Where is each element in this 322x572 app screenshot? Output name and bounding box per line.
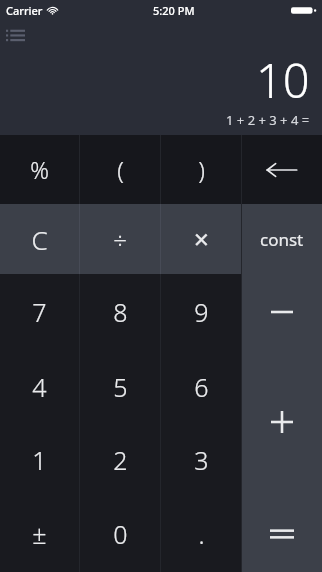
staticText: % bbox=[30, 154, 49, 185]
button[interactable]: 6 bbox=[161, 349, 241, 424]
staticText: 5 bbox=[113, 370, 128, 404]
button[interactable]: History bbox=[6, 25, 32, 47]
staticText: 9 bbox=[194, 295, 209, 329]
staticText: 3 bbox=[194, 443, 209, 477]
staticText: C bbox=[31, 222, 48, 257]
button[interactable]: 2 bbox=[80, 424, 160, 495]
button[interactable]: 5 bbox=[80, 349, 160, 424]
button[interactable]: constants bbox=[242, 204, 322, 274]
button[interactable]: 8 bbox=[80, 274, 160, 349]
button[interactable]: 4 bbox=[0, 349, 79, 424]
button[interactable]: plus bbox=[242, 349, 322, 495]
staticText: 10 bbox=[256, 48, 310, 112]
button[interactable]: equals bbox=[242, 495, 322, 572]
button[interactable]: clear bbox=[0, 204, 79, 274]
button[interactable]: percent bbox=[0, 135, 79, 204]
staticText: 7 bbox=[32, 295, 47, 329]
button[interactable]: 3 bbox=[161, 424, 241, 495]
button[interactable]: . bbox=[161, 495, 241, 572]
staticText: . bbox=[198, 517, 205, 551]
staticText: 8 bbox=[113, 295, 128, 329]
staticText: 4 bbox=[32, 370, 47, 404]
staticText: 0 bbox=[113, 517, 128, 551]
staticText: 5:20 PM bbox=[153, 3, 195, 18]
staticText: ÷ bbox=[113, 223, 127, 256]
staticText: 1 + 2 + 3 + 4 = bbox=[226, 111, 310, 129]
staticText: ( bbox=[117, 153, 124, 186]
staticText: const bbox=[260, 228, 304, 251]
button[interactable]: 1 bbox=[0, 424, 79, 495]
staticText: ± bbox=[32, 517, 47, 551]
staticText: ✕ bbox=[193, 228, 210, 251]
button[interactable]: open parenthesis bbox=[80, 135, 160, 204]
button[interactable]: 0 bbox=[80, 495, 160, 572]
button[interactable]: multiply bbox=[161, 204, 241, 274]
button[interactable]: divide bbox=[80, 204, 160, 274]
button[interactable]: 9 bbox=[161, 274, 241, 349]
button[interactable]: minus bbox=[242, 274, 322, 349]
staticText: ) bbox=[198, 153, 205, 186]
button[interactable]: ± bbox=[0, 495, 79, 572]
staticText: 2 bbox=[113, 443, 128, 477]
button[interactable]: close parenthesis bbox=[161, 135, 241, 204]
staticText: 1 bbox=[32, 443, 47, 477]
button[interactable]: 7 bbox=[0, 274, 79, 349]
staticText: Carrier bbox=[6, 3, 43, 18]
button[interactable]: backspace bbox=[242, 135, 322, 204]
staticText: 6 bbox=[194, 370, 209, 404]
